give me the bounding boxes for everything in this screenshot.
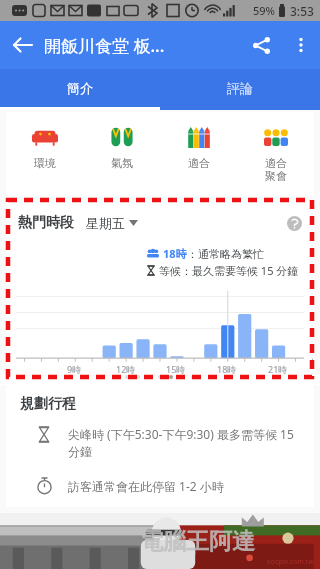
staticText: 電腦王阿達 [140, 527, 255, 556]
staticText: 適合 聚會 [265, 156, 287, 184]
staticText: 氣氛 [111, 156, 133, 170]
button[interactable]: 適合 聚會 [237, 120, 314, 186]
staticText: 59% [253, 3, 275, 18]
staticText: 評論 [227, 80, 253, 96]
staticText: 熱門時段 [18, 214, 74, 232]
staticText: 21時 [268, 363, 288, 375]
staticText: 等候：最久需要等候 15 分鐘 [159, 263, 299, 278]
staticText: 訪客通常會在此停留 1-2 小時 [68, 478, 224, 494]
button[interactable]: Share [240, 24, 282, 66]
button[interactable]: 星期五 [86, 215, 138, 231]
button[interactable]: 訪客通常會在此停留 1-2 小時 [6, 474, 314, 497]
button[interactable]: More options [282, 26, 320, 64]
staticText: 尖峰時 (下午5:30-下午9:30) 最多需等候 15 分鐘 [68, 426, 300, 459]
button[interactable]: 氣氛 [83, 120, 160, 172]
staticText: 簡介 [67, 80, 93, 96]
button[interactable]: 環境 [6, 120, 83, 172]
button[interactable]: Help [282, 211, 306, 235]
staticText: ：通常略為繁忙 [187, 247, 264, 261]
button[interactable]: 適合 [160, 120, 237, 172]
staticText: 環境 [34, 156, 56, 170]
staticText: 18時 [217, 363, 237, 375]
staticText: 3:53 [290, 3, 314, 19]
staticText: 18時 [163, 246, 187, 261]
staticText: 12時 [116, 363, 136, 375]
button[interactable]: 尖峰時 (下午5:30-下午9:30) 最多需等候 15 分鐘 [6, 423, 314, 462]
button[interactable]: Back [0, 23, 44, 67]
staticText: 9時 [67, 363, 82, 375]
button[interactable]: 評論 [160, 69, 320, 107]
staticText: kocpw.com.tw [267, 557, 314, 567]
button[interactable]: 簡介 [0, 69, 160, 107]
staticText: 開飯川食堂 板... [44, 34, 240, 57]
staticText: 規劃行程 [20, 395, 76, 413]
staticText: 星期五 [86, 215, 125, 231]
staticText: 適合 [188, 156, 210, 170]
staticText: 15時 [166, 363, 186, 375]
